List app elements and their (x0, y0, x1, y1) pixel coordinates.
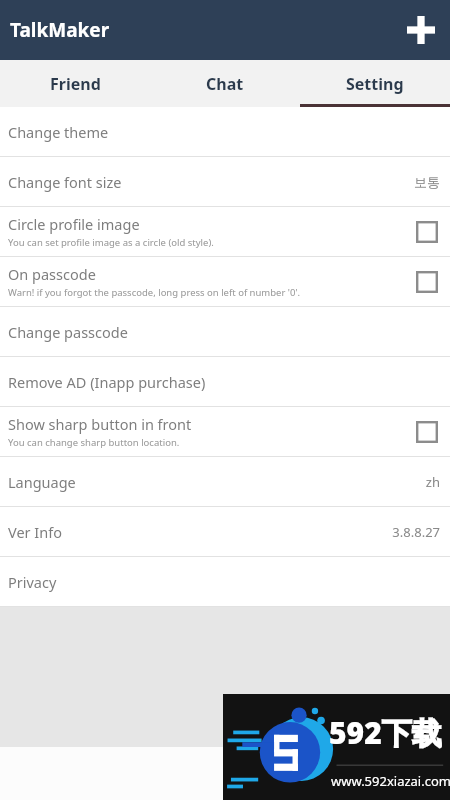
button[interactable]: Show sharp button in front (414, 419, 440, 445)
staticText: Warn! if you forgot the passcode, long p… (8, 286, 301, 299)
staticText: Change passcode (8, 322, 128, 342)
button[interactable]: Ver Info (0, 507, 450, 556)
button[interactable]: Change theme (0, 107, 450, 156)
button[interactable]: Change passcode (0, 307, 450, 356)
staticText: Privacy (8, 572, 57, 592)
button[interactable]: Circle profile image (414, 219, 440, 245)
staticText: Friend (50, 73, 101, 95)
button[interactable]: Add (400, 9, 442, 51)
button[interactable]: Setting (300, 60, 450, 107)
button[interactable]: Friend (0, 60, 150, 107)
button[interactable]: Chat (150, 60, 300, 107)
button[interactable]: Show sharp button in front (0, 407, 450, 456)
staticText: Change font size (8, 172, 122, 192)
staticText: Circle profile image (8, 214, 140, 234)
button[interactable]: Privacy (0, 557, 450, 606)
staticText: www.592xiazai.com (331, 772, 450, 790)
staticText: 3.8.8.27 (392, 523, 440, 541)
staticText: TalkMaker (10, 17, 110, 43)
staticText: Chat (206, 73, 244, 95)
staticText: Language (8, 472, 76, 492)
staticText: 보통 (414, 174, 440, 190)
staticText: Change theme (8, 122, 109, 142)
button[interactable]: On passcode (414, 269, 440, 295)
staticText: You can set profile image as a circle (o… (8, 236, 214, 249)
staticText: You can change sharp button location. (8, 436, 180, 449)
button[interactable]: On passcode (0, 257, 450, 306)
staticText: Show sharp button in front (8, 414, 192, 434)
button[interactable]: Language (0, 457, 450, 506)
staticText: On passcode (8, 264, 96, 284)
staticText: Remove AD (Inapp purchase) (8, 372, 206, 392)
staticText: Ver Info (8, 522, 62, 542)
staticText: 592下载 (329, 712, 442, 753)
staticText: Setting (346, 73, 404, 95)
button[interactable]: Remove AD (Inapp purchase) (0, 357, 450, 406)
staticText: zh (425, 473, 440, 491)
button[interactable]: Circle profile image (0, 207, 450, 256)
button[interactable]: Change font size (0, 157, 450, 206)
